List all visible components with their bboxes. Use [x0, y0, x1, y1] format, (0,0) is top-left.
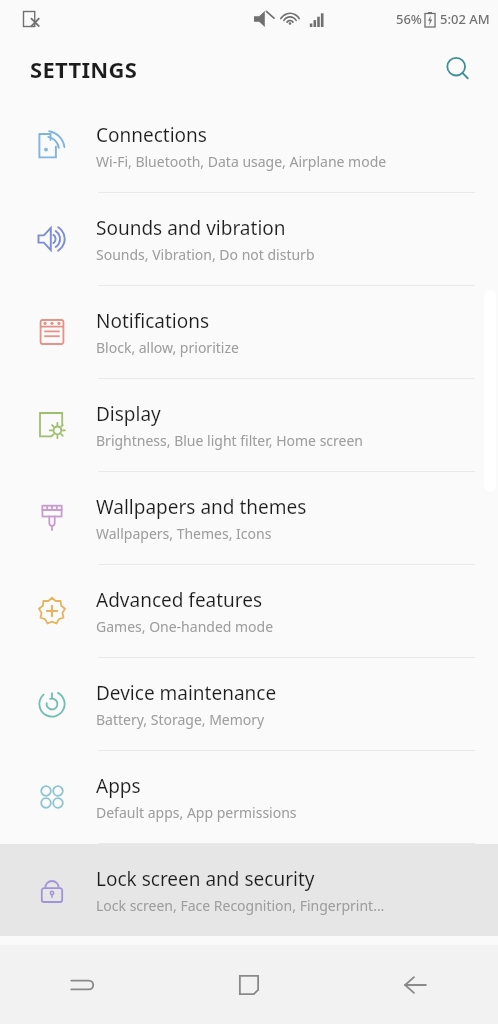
button[interactable]: Notifications: [0, 286, 498, 378]
button[interactable]: Connections: [0, 100, 498, 192]
staticText: Lock screen and security: [96, 866, 315, 892]
staticText: 5:02 AM: [440, 10, 490, 28]
button[interactable]: Recents: [0, 945, 166, 1024]
staticText: Lock screen, Face Recognition, Fingerpri…: [96, 896, 385, 915]
staticText: Sounds and vibration: [96, 215, 286, 241]
staticText: Sounds, Vibration, Do not disturb: [96, 245, 315, 264]
staticText: Connections: [96, 122, 207, 148]
staticText: Device maintenance: [96, 680, 277, 706]
button[interactable]: Sounds and vibration: [0, 193, 498, 285]
staticText: Display: [96, 401, 161, 427]
button[interactable]: Device maintenance: [0, 658, 498, 750]
button[interactable]: Wallpapers and themes: [0, 472, 498, 564]
staticText: Brightness, Blue light filter, Home scre…: [96, 431, 364, 450]
staticText: Battery, Storage, Memory: [96, 710, 265, 729]
button[interactable]: Display: [0, 379, 498, 471]
staticText: Default apps, App permissions: [96, 803, 297, 822]
button[interactable]: Search: [436, 47, 480, 91]
staticText: Wi-Fi, Bluetooth, Data usage, Airplane m…: [96, 152, 387, 171]
staticText: Apps: [96, 773, 141, 799]
staticText: Games, One-handed mode: [96, 617, 274, 636]
staticText: Notifications: [96, 308, 210, 334]
button[interactable]: Home: [166, 945, 332, 1024]
button[interactable]: Back: [332, 945, 498, 1024]
staticText: 56%: [396, 10, 422, 28]
button[interactable]: Lock screen and security: [0, 844, 498, 936]
staticText: Block, allow, prioritize: [96, 338, 239, 357]
button[interactable]: Apps: [0, 751, 498, 843]
staticText: Advanced features: [96, 587, 263, 613]
staticText: Wallpapers and themes: [96, 494, 307, 520]
button[interactable]: Advanced features: [0, 565, 498, 657]
staticText: Wallpapers, Themes, Icons: [96, 524, 272, 543]
staticText: SETTINGS: [30, 54, 138, 84]
